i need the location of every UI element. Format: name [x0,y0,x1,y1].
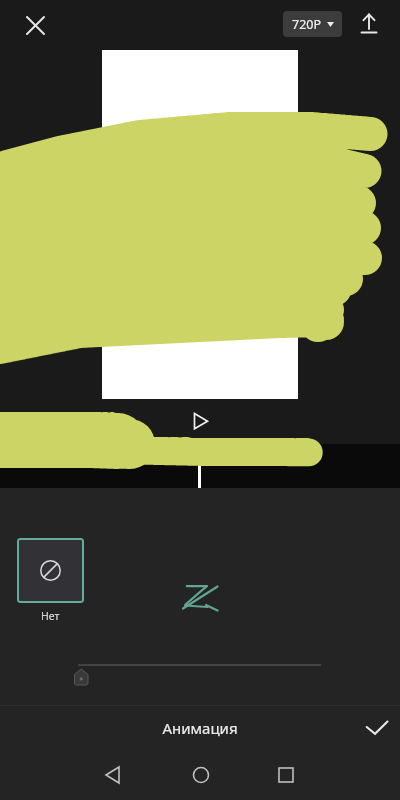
staticText: Нет [41,609,60,623]
button[interactable]: Close [15,5,55,45]
staticText: 720P [292,16,322,33]
button[interactable]: Confirm [356,708,396,748]
button[interactable] [0,650,400,690]
staticText: Анимация [162,718,238,738]
button[interactable]: Нет [16,538,85,623]
button[interactable]: Export [349,4,388,43]
button[interactable]: 720P [283,11,342,37]
